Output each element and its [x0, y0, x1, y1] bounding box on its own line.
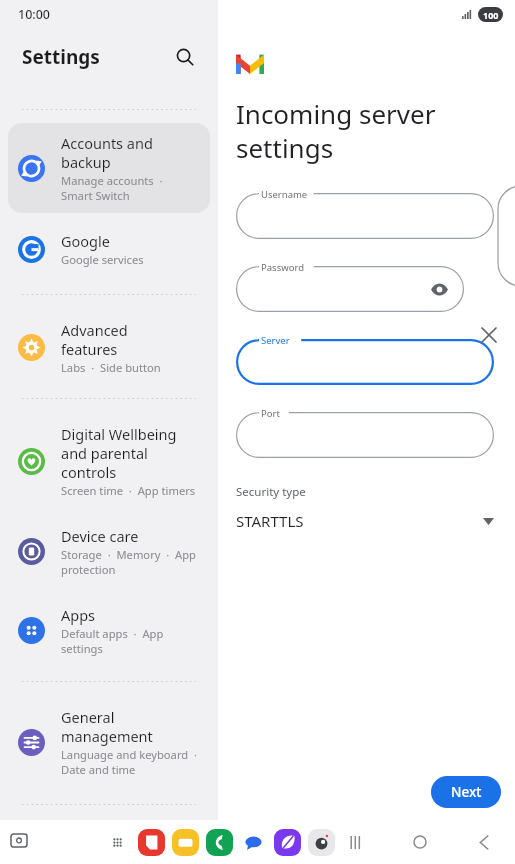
staticText: Next [451, 783, 482, 801]
staticText: Language and keyboard · Date and time [61, 747, 197, 777]
button[interactable]: General management [8, 697, 210, 787]
button[interactable]: App 1 [172, 829, 199, 856]
staticText: STARTTLS [236, 511, 304, 531]
button[interactable]: Home [407, 829, 433, 855]
button[interactable]: Advanced features [8, 310, 210, 385]
staticText: Accounts and backup [61, 133, 153, 172]
button[interactable]: Server [236, 339, 494, 385]
button[interactable]: Recents [343, 829, 369, 855]
staticText: Digital Wellbeing and parental controls [61, 424, 177, 482]
staticText: Security type [236, 484, 306, 500]
staticText: Default apps · App settings [61, 626, 164, 656]
button[interactable]: App 0 [138, 829, 165, 856]
button[interactable]: Apps [8, 595, 210, 666]
staticText: Apps [61, 605, 96, 625]
button[interactable]: Password [236, 266, 464, 312]
button[interactable]: Port [236, 412, 494, 458]
staticText: Storage · Memory · App protection [61, 547, 196, 577]
button[interactable]: Back [471, 829, 497, 855]
button[interactable]: Recent apps [6, 829, 32, 855]
staticText: Port [261, 407, 280, 420]
button[interactable]: Digital Wellbeing and parental controls [8, 414, 210, 508]
button[interactable]: Search [168, 40, 202, 74]
button[interactable]: Google [8, 221, 210, 277]
button[interactable]: Device care [8, 516, 210, 587]
button[interactable]: Show password [426, 276, 452, 302]
staticText: Manage accounts · Smart Switch [61, 173, 163, 203]
staticText: Server [261, 334, 290, 347]
staticText: Incoming server settings [236, 96, 436, 165]
button[interactable]: STARTTLS [236, 511, 494, 531]
staticText: Settings [22, 44, 100, 70]
staticText: Password [261, 261, 304, 274]
button[interactable]: Clear [474, 320, 504, 350]
staticText: Screen time · App timers [61, 483, 196, 498]
button[interactable]: App 5 [308, 829, 335, 856]
button[interactable]: Next [431, 776, 501, 808]
button[interactable]: App 3 [240, 829, 267, 856]
button[interactable]: App 4 [274, 829, 301, 856]
button[interactable]: Username [236, 193, 494, 239]
button[interactable]: App 2 [206, 829, 233, 856]
staticText: Advanced features [61, 320, 128, 359]
staticText: 100 [483, 9, 499, 21]
staticText: 10:00 [18, 6, 51, 23]
button[interactable]: Accounts and backup [8, 123, 210, 213]
staticText: Device care [61, 526, 139, 546]
staticText: Username [261, 188, 308, 201]
staticText: Google [61, 231, 110, 251]
staticText: Labs · Side button [61, 360, 161, 375]
button[interactable]: All apps [104, 829, 131, 856]
staticText: General management [61, 707, 153, 746]
staticText: Google services [61, 252, 144, 267]
